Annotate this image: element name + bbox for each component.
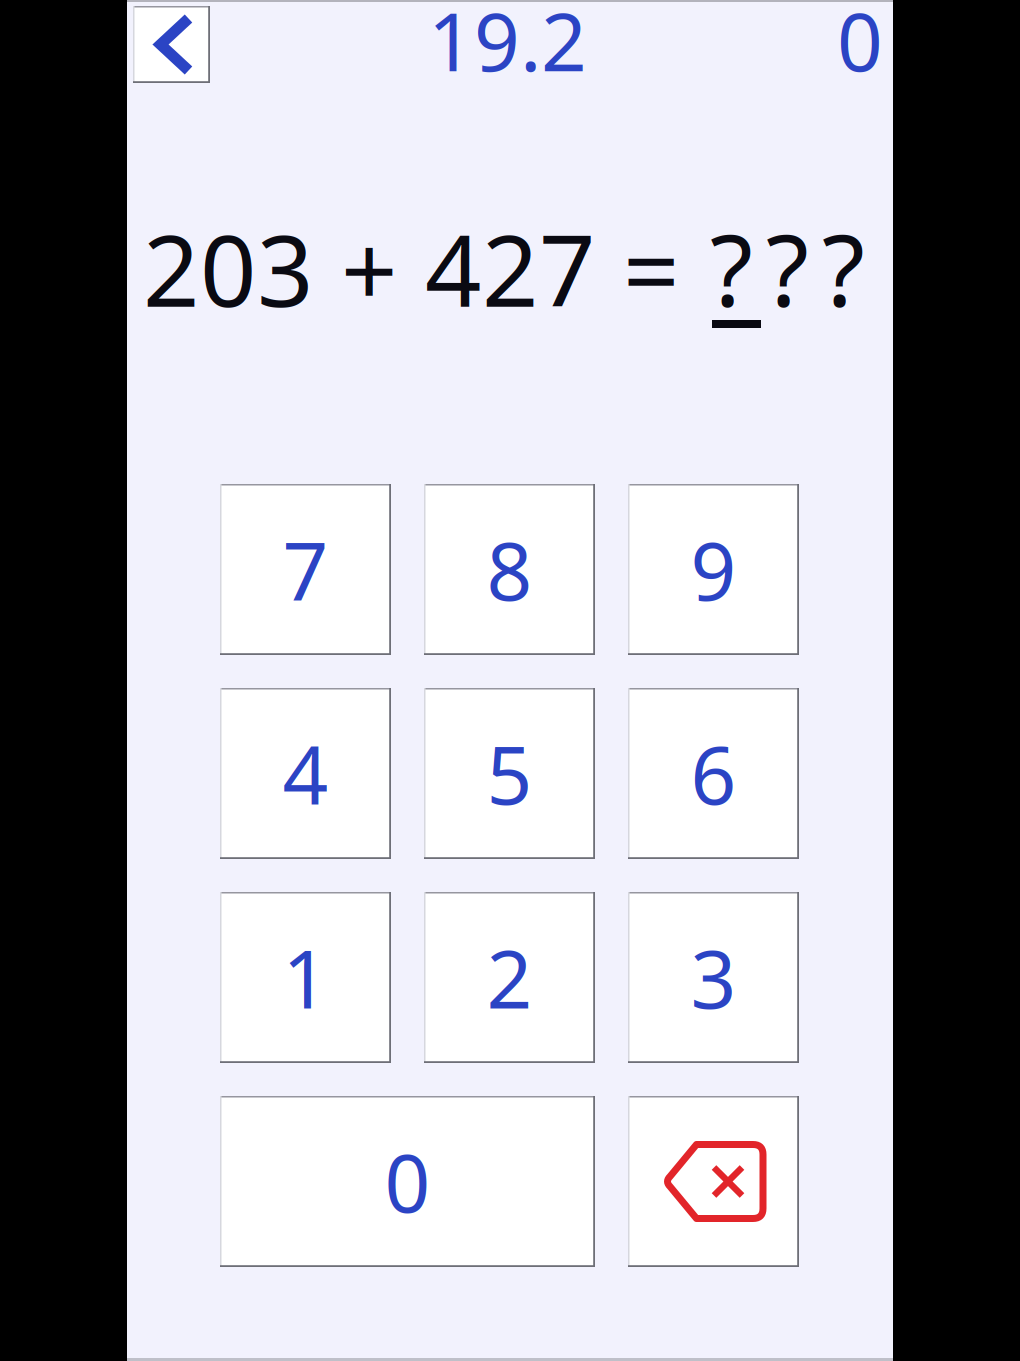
button[interactable]: Back: [133, 6, 210, 83]
button[interactable]: Delete: [628, 1096, 799, 1267]
staticText: 0: [384, 1128, 430, 1235]
button[interactable]: 5: [424, 688, 595, 859]
staticText: 6: [690, 720, 736, 827]
button[interactable]: 7: [220, 484, 391, 655]
button[interactable]: 1: [220, 892, 391, 1063]
button[interactable]: 8: [424, 484, 595, 655]
staticText: 9: [690, 516, 736, 623]
button[interactable]: 6: [628, 688, 799, 859]
button[interactable]: 9: [628, 484, 799, 655]
staticText: ???: [710, 203, 865, 334]
staticText: 2: [486, 924, 532, 1031]
button[interactable]: 0: [837, 0, 883, 93]
staticText: 203 + 427 =: [143, 203, 679, 334]
staticText: 5: [486, 720, 532, 827]
staticText: 8: [486, 516, 532, 623]
staticText: 0: [837, 0, 883, 93]
button[interactable]: 2: [424, 892, 595, 1063]
button[interactable]: 0: [220, 1096, 595, 1267]
button[interactable]: 3: [628, 892, 799, 1063]
staticText: 1: [282, 924, 328, 1031]
staticText: 4: [282, 720, 328, 827]
button[interactable]: 4: [220, 688, 391, 859]
staticText: 19.2: [428, 0, 587, 93]
staticText: 7: [282, 516, 328, 623]
staticText: 3: [690, 924, 736, 1031]
